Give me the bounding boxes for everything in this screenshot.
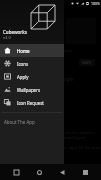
staticText: ght on Google [40,76,74,83]
button[interactable]: Apply [0,70,64,83]
staticText: v3.0 [3,35,11,40]
button[interactable]: Recents [9,165,23,179]
button[interactable]: RATE [79,59,95,66]
button[interactable]: Home [32,165,46,179]
staticText: Icons [17,61,29,67]
button[interactable]: Icon Request [0,96,64,109]
staticText: Cubeworks [3,29,27,35]
staticText: Wallpapers [17,87,40,93]
staticText: 100% [91,1,100,6]
staticText: Home [17,48,30,54]
staticText: About The App [4,119,35,125]
button[interactable]: Icons [0,57,64,70]
button[interactable]: Wallpapers [0,83,64,96]
button[interactable]: Back [55,165,69,179]
staticText: RATE [82,60,92,65]
staticText: Icon Request [17,100,44,106]
staticText: Apply [17,74,29,80]
staticText: KlearKat is a CM theme made to suit your… [34,130,101,150]
button[interactable]: Home [0,44,64,57]
staticText: al look. [60,48,74,53]
button[interactable]: About The App [0,117,64,127]
staticText: 4:05 [47,1,55,6]
button[interactable]: Menu [78,165,92,179]
staticText: KlearKat [34,120,59,128]
